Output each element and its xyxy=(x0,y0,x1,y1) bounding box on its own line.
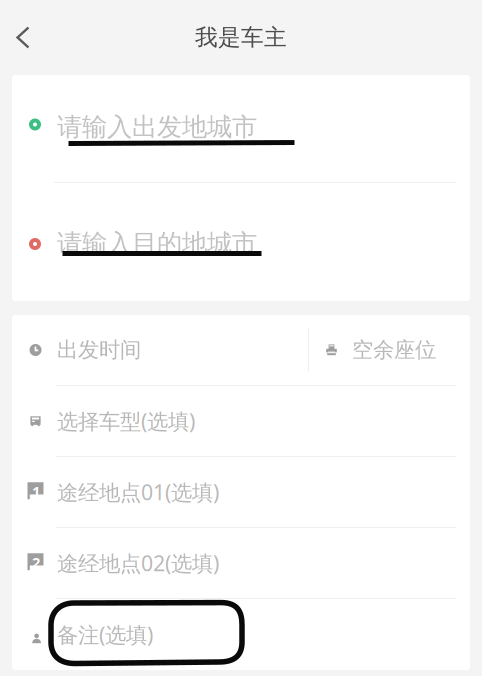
staticText: 2 xyxy=(32,553,40,572)
staticText: 选择车型(选填) xyxy=(57,407,195,435)
button[interactable]: Back xyxy=(3,15,43,59)
staticText: 空余座位 xyxy=(352,337,436,363)
button[interactable]: 请输入目的地城市 xyxy=(12,183,470,301)
staticText: 途经地点01(选填) xyxy=(57,478,219,506)
button[interactable]: 请输入出发地城市 xyxy=(12,75,470,182)
button[interactable]: 1 xyxy=(12,457,470,527)
staticText: 请输入出发地城市 xyxy=(57,111,257,142)
button[interactable]: 选择车型(选填) xyxy=(12,386,470,456)
staticText: 出发时间 xyxy=(57,337,141,363)
staticText: 备注(选填) xyxy=(57,620,153,649)
staticText: 途经地点02(选填) xyxy=(57,549,219,577)
button[interactable]: 备注(选填) xyxy=(12,599,470,670)
staticText: 1 xyxy=(32,482,40,501)
staticText: 请输入目的地城市 xyxy=(57,228,257,259)
button[interactable]: 2 xyxy=(12,528,470,598)
button[interactable]: 出发时间 xyxy=(12,315,308,385)
button[interactable]: 空余座位 xyxy=(309,315,470,385)
staticText: 我是车主 xyxy=(195,24,287,51)
